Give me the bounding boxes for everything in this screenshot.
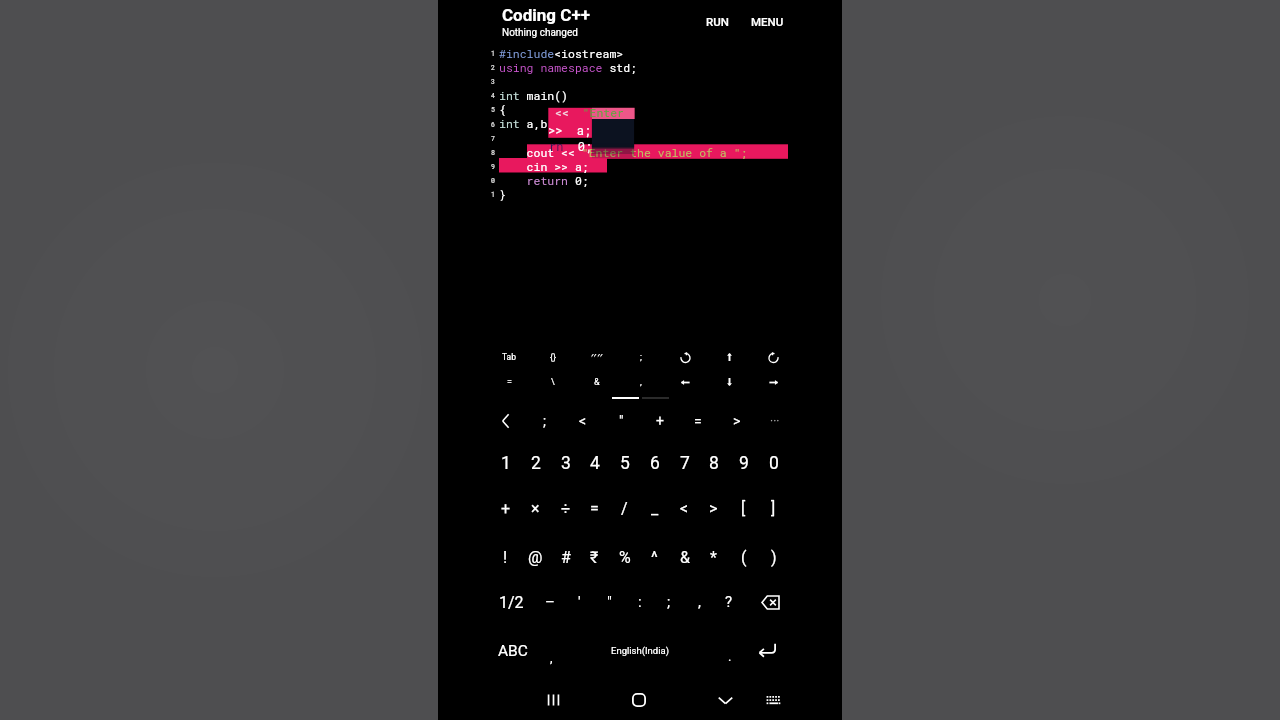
button[interactable]: ABC bbox=[488, 630, 538, 672]
button[interactable]: < bbox=[670, 488, 699, 528]
button[interactable]: 4 bbox=[580, 443, 609, 483]
staticText: cin >> a; bbox=[499, 159, 589, 174]
button[interactable]: < bbox=[565, 406, 601, 436]
staticText: + bbox=[501, 499, 511, 518]
button[interactable]: ! bbox=[491, 536, 520, 578]
button[interactable]: Cursor left bbox=[665, 371, 705, 393]
staticText: ( bbox=[741, 548, 747, 567]
staticText: int a,b; bbox=[499, 116, 555, 131]
staticText: 5 bbox=[620, 453, 630, 474]
staticText: " bbox=[607, 593, 612, 611]
button[interactable]: ^ bbox=[640, 536, 669, 578]
button[interactable]: ' bbox=[564, 582, 594, 622]
staticText: ? bbox=[725, 593, 733, 611]
button[interactable]: * bbox=[699, 536, 728, 578]
button[interactable]: ( bbox=[729, 536, 758, 578]
staticText: 4 bbox=[590, 453, 600, 474]
button[interactable]: 7 bbox=[670, 443, 699, 483]
button[interactable]: + bbox=[642, 406, 678, 436]
button[interactable]: _ bbox=[640, 488, 669, 528]
staticText: ₹ bbox=[590, 548, 599, 567]
staticText: ) bbox=[771, 548, 777, 567]
button[interactable]: @ bbox=[521, 536, 550, 578]
button[interactable]: , bbox=[684, 582, 714, 622]
staticText: ABC bbox=[498, 642, 528, 660]
button[interactable]: ; bbox=[526, 406, 562, 436]
button[interactable]: / bbox=[610, 488, 639, 528]
button[interactable]: 2 bbox=[521, 443, 550, 483]
staticText: [ bbox=[741, 499, 746, 518]
button[interactable]: ? bbox=[714, 582, 744, 622]
staticText: 6 bbox=[650, 453, 660, 474]
button[interactable]: & bbox=[577, 371, 617, 393]
button[interactable]: 1/2 bbox=[496, 582, 526, 622]
staticText: 8 bbox=[491, 148, 495, 157]
button[interactable]: ; bbox=[621, 346, 661, 368]
staticText: using namespace std; bbox=[499, 60, 638, 75]
staticText: ! bbox=[503, 548, 508, 567]
staticText: Tab bbox=[502, 352, 516, 362]
button[interactable]: ) bbox=[759, 536, 788, 578]
button[interactable]: & bbox=[670, 536, 699, 578]
button[interactable]: × bbox=[521, 488, 550, 528]
button[interactable]: ₹ bbox=[580, 536, 609, 578]
button[interactable]: = bbox=[680, 406, 716, 436]
button[interactable]: [ bbox=[729, 488, 758, 528]
button[interactable]: 1 bbox=[491, 443, 520, 483]
button[interactable]: Cursor right bbox=[753, 371, 793, 393]
button[interactable]: Recents bbox=[533, 680, 573, 720]
button[interactable]: 3 bbox=[551, 443, 580, 483]
button[interactable]: Home bbox=[619, 680, 659, 720]
button[interactable]: RUN bbox=[702, 11, 733, 32]
button[interactable]: Redo bbox=[753, 346, 793, 368]
staticText: } bbox=[499, 187, 506, 202]
button[interactable]: " bbox=[603, 406, 639, 436]
button[interactable]: > bbox=[719, 406, 755, 436]
button[interactable]: Tab bbox=[489, 346, 529, 368]
button[interactable]: Back bbox=[488, 406, 524, 436]
staticText: # bbox=[561, 548, 571, 567]
button[interactable]: + bbox=[491, 488, 520, 528]
button[interactable]: % bbox=[610, 536, 639, 578]
button[interactable]: 8 bbox=[699, 443, 728, 483]
button[interactable]: ] bbox=[759, 488, 788, 528]
button[interactable]: > bbox=[699, 488, 728, 528]
staticText: * bbox=[710, 548, 717, 567]
button[interactable]: ; bbox=[654, 582, 684, 622]
staticText: 1 bbox=[491, 49, 495, 58]
button[interactable]: ÷ bbox=[551, 488, 580, 528]
button[interactable]: Shift up bbox=[709, 346, 749, 368]
button[interactable]: 6 bbox=[640, 443, 669, 483]
button[interactable]: = bbox=[489, 371, 529, 393]
button[interactable]: : bbox=[625, 582, 655, 622]
button[interactable]: Enter bbox=[746, 629, 788, 671]
staticText: int main() bbox=[499, 88, 569, 103]
staticText: × bbox=[531, 499, 540, 518]
button[interactable]: Hide keyboard bbox=[705, 680, 745, 720]
button[interactable]: 9 bbox=[729, 443, 758, 483]
button[interactable]: \ bbox=[533, 371, 573, 393]
button[interactable]: 0 bbox=[759, 443, 788, 483]
staticText: 1 bbox=[501, 453, 511, 474]
button[interactable]: Change keyboard bbox=[754, 680, 794, 720]
button[interactable]: . bbox=[716, 635, 744, 677]
button[interactable]: ··· bbox=[757, 406, 793, 436]
button[interactable]: " bbox=[594, 582, 624, 622]
button[interactable]: , bbox=[621, 371, 661, 393]
button[interactable]: Backspace bbox=[749, 582, 791, 622]
button[interactable]: – bbox=[535, 582, 565, 622]
button[interactable]: MENU bbox=[747, 11, 788, 32]
button[interactable]: English(India) bbox=[580, 629, 700, 671]
button[interactable]: Cursor down bbox=[709, 371, 749, 393]
button[interactable]: Undo bbox=[665, 346, 705, 368]
button[interactable] bbox=[577, 346, 617, 368]
button[interactable]: 5 bbox=[610, 443, 639, 483]
button[interactable]: {} bbox=[533, 346, 573, 368]
button[interactable]: # bbox=[551, 536, 580, 578]
staticText: = bbox=[507, 377, 512, 388]
button[interactable]: = bbox=[580, 488, 609, 528]
staticText: ÷ bbox=[561, 499, 571, 518]
button[interactable]: , bbox=[537, 636, 565, 678]
staticText: \ bbox=[551, 377, 555, 388]
staticText: 4 bbox=[491, 91, 495, 100]
